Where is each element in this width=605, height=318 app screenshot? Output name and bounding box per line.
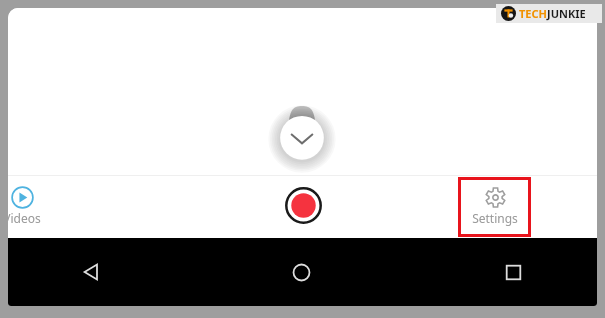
button[interactable]: Record [205, 176, 401, 238]
staticText: TECH [519, 6, 547, 21]
staticText: JUNKIE [547, 6, 586, 21]
staticText: Videos [8, 210, 41, 226]
staticText: Settings [472, 210, 518, 226]
button[interactable]: Back [8, 238, 205, 306]
button[interactable]: Settings [458, 177, 531, 237]
button[interactable]: Home [205, 238, 401, 306]
button[interactable]: Videos [8, 176, 205, 238]
button[interactable]: Recent apps [401, 238, 597, 306]
